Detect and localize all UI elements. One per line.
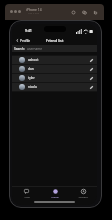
staticText: Profile	[51, 195, 59, 198]
staticText: nicola	[28, 85, 37, 89]
other: Edit dan	[89, 67, 94, 72]
staticText: iPhone 14	[26, 7, 42, 11]
button[interactable]: Search:	[12, 45, 97, 52]
button[interactable]: Rotate	[71, 10, 76, 15]
staticText: Profile	[20, 38, 31, 43]
other: Edit ashoot	[89, 58, 94, 63]
button[interactable]: Account	[69, 187, 97, 199]
staticText: Search:	[14, 47, 25, 51]
staticText: Chat	[24, 195, 30, 198]
button[interactable]: dan	[12, 65, 97, 73]
button[interactable]: Profile	[41, 187, 69, 199]
button[interactable]: Profile	[15, 38, 31, 43]
other: Edit tyler	[89, 76, 94, 81]
button[interactable]: Throttling	[82, 10, 87, 15]
button[interactable]: ashoot	[12, 56, 97, 64]
staticText: 9:41	[25, 28, 32, 33]
staticText: dan	[28, 67, 34, 71]
staticText: Account	[78, 195, 88, 198]
staticText: Friend list	[46, 38, 64, 43]
staticText: ashoot	[28, 58, 39, 62]
button[interactable]: Chat	[12, 187, 41, 199]
other: Edit nicola	[89, 85, 94, 90]
button[interactable]: tyler	[12, 74, 97, 82]
button[interactable]: nicola	[12, 83, 97, 91]
staticText: 390 x 844	[28, 11, 40, 14]
button[interactable]: More options	[93, 10, 98, 15]
staticText: username	[27, 47, 43, 51]
staticText: tyler	[28, 76, 35, 80]
